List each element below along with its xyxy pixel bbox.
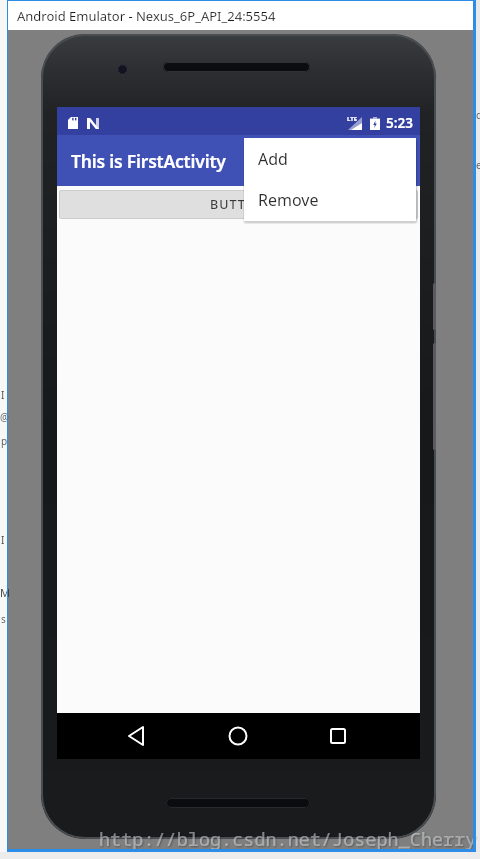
staticText: Remove	[258, 189, 319, 211]
staticText: LTE	[347, 115, 358, 123]
staticText: BUTTON	[210, 196, 267, 213]
staticText: This is FirstActivity	[71, 149, 226, 173]
button[interactable]: Add	[244, 138, 416, 179]
staticText: e	[476, 158, 480, 172]
staticText: Android Emulator - Nexus_6P_API_24:5554	[17, 7, 276, 25]
staticText: http://blog.csdn.net/Joseph_Cherry	[99, 826, 477, 851]
button[interactable]: Android Emulator - Nexus_6P_API_24:5554	[8, 1, 473, 30]
staticText: I	[1, 388, 5, 402]
staticText: @	[0, 410, 9, 424]
staticText: Add	[258, 148, 288, 170]
staticText: M	[0, 585, 10, 600]
button[interactable]: BUTTON	[59, 190, 418, 219]
staticText: I	[1, 533, 5, 547]
staticText: 5:23	[386, 114, 413, 132]
button[interactable]: Remove	[244, 179, 416, 221]
staticText: s	[1, 612, 6, 626]
staticText: d	[476, 108, 480, 122]
staticText: p	[1, 434, 8, 448]
